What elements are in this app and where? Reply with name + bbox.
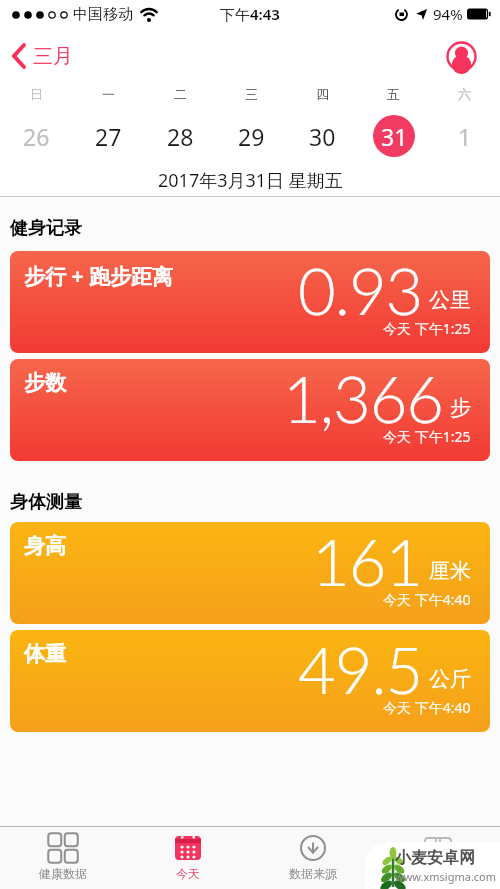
staticText: 步 xyxy=(450,395,471,421)
staticText: 三 xyxy=(245,86,258,102)
button[interactable]: 今天 xyxy=(125,827,250,889)
staticText: 医疗急救卡 xyxy=(408,866,468,881)
staticText: 健身记录 xyxy=(10,217,82,240)
button[interactable]: 身高 xyxy=(10,522,490,624)
staticText: 今天 下午1:25 xyxy=(383,427,471,446)
staticText: 六 xyxy=(458,86,471,102)
staticText: 数据来源 xyxy=(289,866,337,881)
staticText: 步数 xyxy=(24,370,66,396)
staticText: 五 xyxy=(387,86,400,102)
staticText: 今天 下午4:40 xyxy=(383,590,471,609)
staticText: 日 xyxy=(30,86,43,102)
staticText: 29 xyxy=(238,121,265,152)
staticText: 厘米 xyxy=(429,558,471,584)
button[interactable]: 1 xyxy=(429,108,500,164)
button[interactable]: 步行 + 跑步距离 xyxy=(10,251,490,353)
button[interactable]: 31 xyxy=(358,108,429,164)
staticText: 公斤 xyxy=(429,666,471,692)
staticText: 公里 xyxy=(429,287,471,313)
staticText: 身高 xyxy=(24,533,66,559)
button[interactable] xyxy=(446,41,477,72)
button[interactable]: 健康数据 xyxy=(0,827,125,889)
staticText: 161 xyxy=(312,522,423,600)
staticText: 今天 xyxy=(176,866,200,881)
staticText: 中国移动 xyxy=(73,5,133,24)
button[interactable]: 27 xyxy=(72,108,144,164)
staticText: 94% xyxy=(433,4,463,24)
staticText: 小麦安卓网 xyxy=(395,848,475,868)
staticText: 健康数据 xyxy=(39,866,87,881)
staticText: 今天 下午4:40 xyxy=(383,698,471,717)
staticText: 27 xyxy=(95,121,122,152)
button[interactable]: 体重 xyxy=(10,630,490,732)
button[interactable]: 29 xyxy=(216,108,287,164)
staticText: 四 xyxy=(316,86,329,102)
staticText: 28 xyxy=(167,121,194,152)
button[interactable]: 26 xyxy=(0,108,72,164)
button[interactable]: 28 xyxy=(144,108,216,164)
button[interactable]: 步数 xyxy=(10,359,490,461)
button[interactable]: 三月 xyxy=(12,43,73,69)
button[interactable]: 医疗急救卡 xyxy=(375,827,500,889)
staticText: www.xmsigma.com xyxy=(395,869,497,884)
staticText: 今天 下午1:25 xyxy=(383,319,471,338)
staticText: 0.93 xyxy=(298,251,423,329)
staticText: 49.5 xyxy=(298,630,423,708)
staticText: 步行 + 跑步距离 xyxy=(24,262,173,291)
staticText: 二 xyxy=(174,86,187,102)
staticText: 2017年3月31日 星期五 xyxy=(158,168,343,193)
staticText: 体重 xyxy=(24,641,66,667)
staticText: 下午4:43 xyxy=(220,4,280,24)
staticText: 身体测量 xyxy=(10,491,82,514)
staticText: 1,366 xyxy=(283,359,444,437)
button[interactable]: 30 xyxy=(287,108,358,164)
staticText: 26 xyxy=(23,121,50,152)
staticText: 30 xyxy=(309,121,336,152)
staticText: 31 xyxy=(381,121,408,152)
staticText: 一 xyxy=(102,86,115,102)
staticText: 1 xyxy=(458,121,472,152)
button[interactable]: 数据来源 xyxy=(250,827,375,889)
staticText: 三月 xyxy=(33,44,73,69)
